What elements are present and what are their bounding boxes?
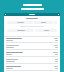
button[interactable] <box>35 29 57 32</box>
button[interactable] <box>4 58 60 65</box>
button[interactable] <box>4 37 60 44</box>
button[interactable]: More options <box>6 17 58 33</box>
button[interactable] <box>7 29 34 32</box>
button[interactable]: Menu <box>4 13 60 16</box>
button[interactable] <box>7 21 33 24</box>
button[interactable] <box>4 44 60 51</box>
button[interactable] <box>4 51 60 58</box>
button[interactable] <box>4 65 60 72</box>
button[interactable] <box>34 21 53 24</box>
